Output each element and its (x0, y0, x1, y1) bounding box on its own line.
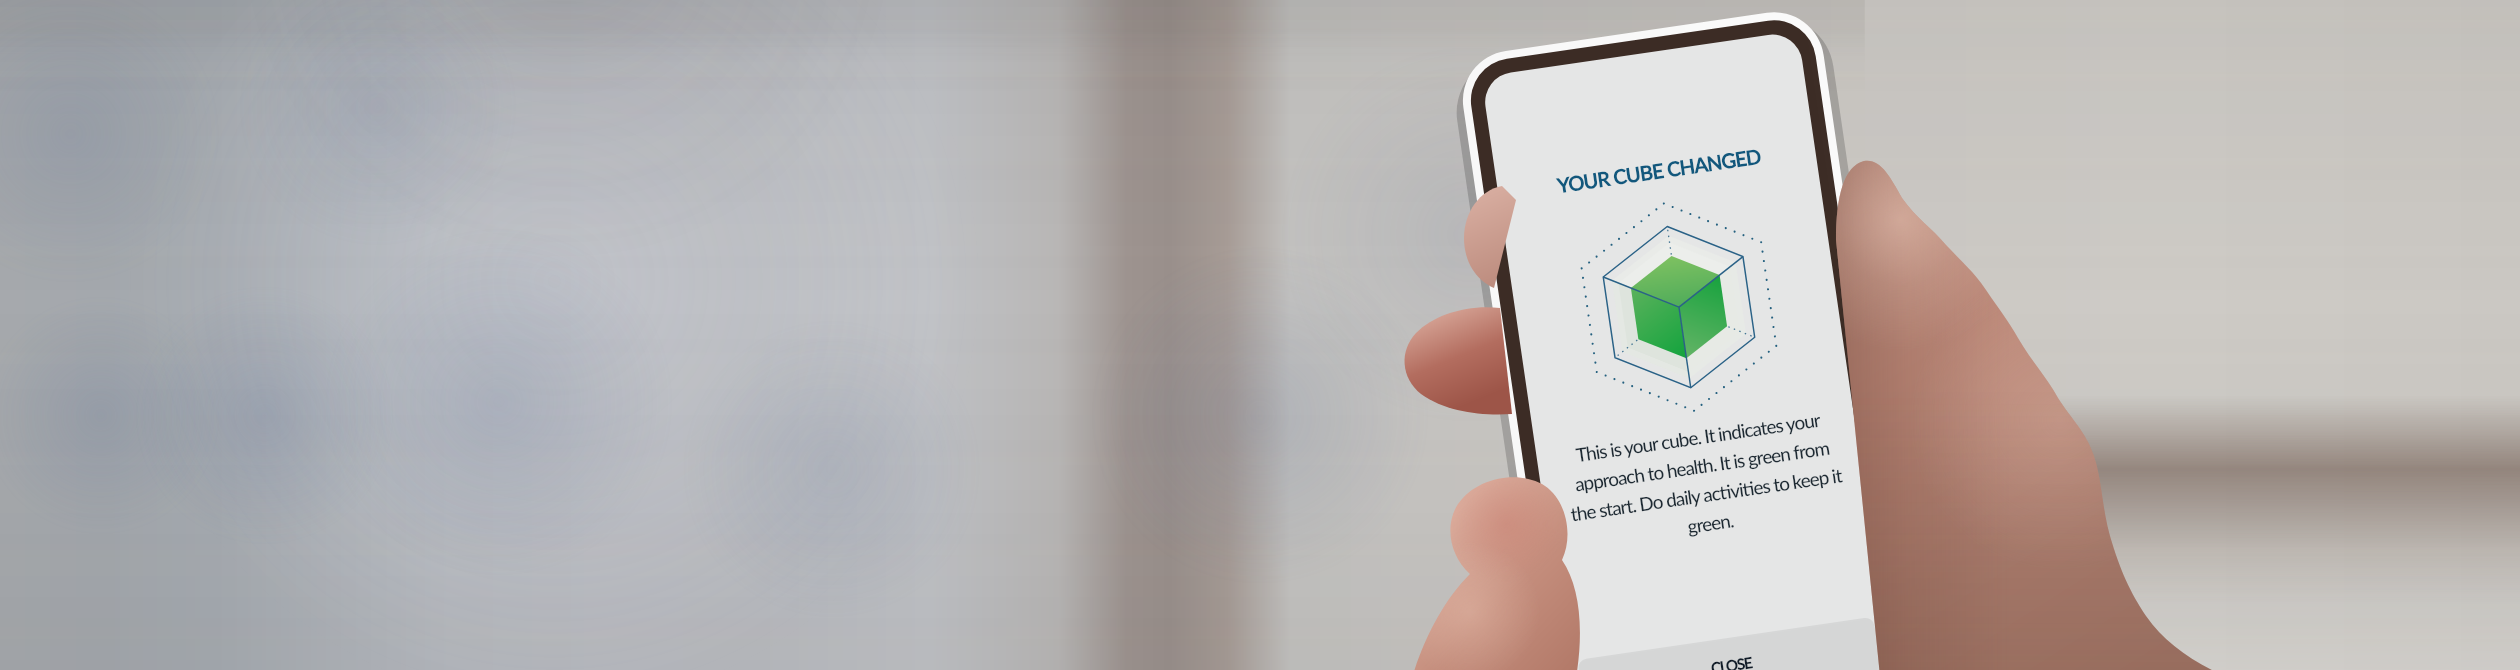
staticText: approach to health. It is green from (1542, 431, 1862, 500)
button[interactable]: CLOSE (1579, 617, 1883, 670)
staticText: green. (1550, 489, 1870, 558)
staticText: CLOSE (1710, 653, 1753, 670)
staticText: the start. Do daily activities to keep i… (1546, 460, 1866, 529)
staticText: YOUR CUBE CHANGED (1499, 135, 1819, 205)
staticText: This is your cube. It indicates your (1538, 402, 1858, 471)
